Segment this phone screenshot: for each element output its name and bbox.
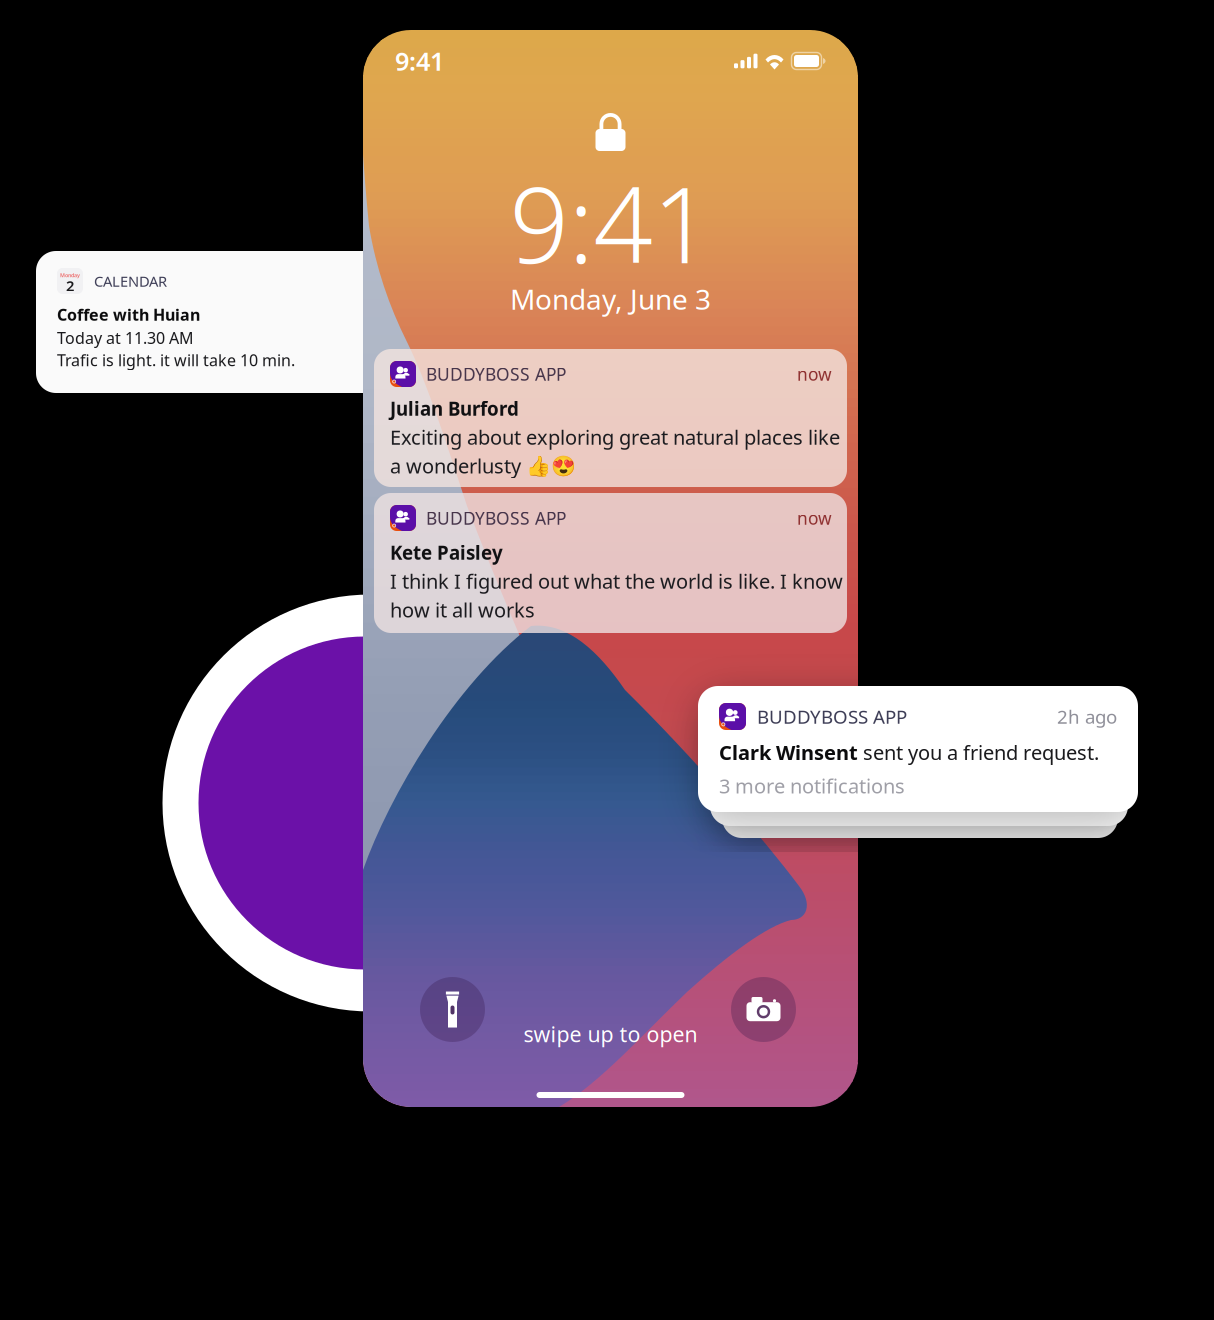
staticText: 3 more notifications: [719, 773, 905, 799]
staticText: BUDDYBOSS APP: [757, 704, 907, 729]
staticText: Coffee with Huian: [57, 304, 200, 325]
staticText: sent you a friend request.: [858, 739, 1099, 766]
staticText: BUDDYBOSS APP: [426, 506, 566, 529]
staticText: Clark Winsent: [719, 739, 858, 766]
staticText: now: [797, 362, 832, 385]
staticText: a wonderlusty 👍😍: [390, 452, 576, 479]
staticText: 2: [66, 276, 74, 295]
staticText: CALENDAR: [94, 271, 167, 291]
staticText: Kete Paisley: [390, 540, 503, 565]
button[interactable]: BUDDYBOSS APP: [374, 349, 847, 487]
staticText: 9:41: [509, 154, 711, 292]
staticText: BUDDYBOSS APP: [426, 362, 566, 385]
button[interactable]: Flashlight: [420, 977, 485, 1042]
staticText: swipe up to open: [523, 1020, 697, 1048]
staticText: now: [797, 506, 832, 529]
staticText: Exciting about exploring great natural p…: [390, 424, 840, 450]
staticText: 2h ago: [1057, 704, 1117, 729]
button[interactable]: BUDDYBOSS APP: [698, 686, 1138, 812]
staticText: I think I figured out what the world is …: [390, 568, 843, 594]
staticText: Monday, June 3: [510, 280, 711, 318]
staticText: Monday: [60, 272, 80, 279]
button[interactable]: Camera: [731, 977, 796, 1042]
staticText: Trafic is light. it will take 10 min.: [57, 349, 295, 371]
button[interactable]: Monday: [36, 251, 436, 393]
staticText: Today at 11.30 AM: [57, 327, 194, 348]
button[interactable]: BUDDYBOSS APP: [374, 493, 847, 633]
staticText: how it all works: [390, 596, 535, 623]
staticText: 9:41: [395, 44, 444, 78]
staticText: Julian Burford: [390, 396, 519, 421]
